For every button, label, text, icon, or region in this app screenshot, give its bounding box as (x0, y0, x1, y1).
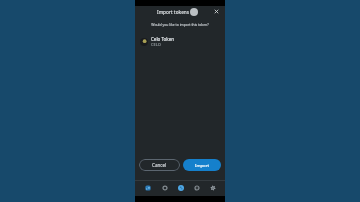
button[interactable]: Browser (173, 180, 189, 196)
button[interactable]: Cancel (139, 159, 180, 171)
button[interactable]: Wallet (139, 180, 156, 196)
staticText: Import tokens (157, 9, 190, 15)
staticText: CELO (151, 42, 161, 47)
button[interactable]: Import (183, 159, 221, 171)
staticText: Would you like to import this token? (135, 22, 225, 27)
staticText: Celo Token (151, 36, 175, 42)
staticText: Import (195, 162, 210, 168)
button[interactable]: Celo Token (140, 36, 230, 47)
staticText: Cancel (152, 162, 167, 168)
button[interactable]: Close (211, 6, 221, 16)
button[interactable]: History (156, 180, 173, 196)
button[interactable]: Staking (189, 180, 205, 196)
button[interactable]: Settings (205, 180, 221, 196)
